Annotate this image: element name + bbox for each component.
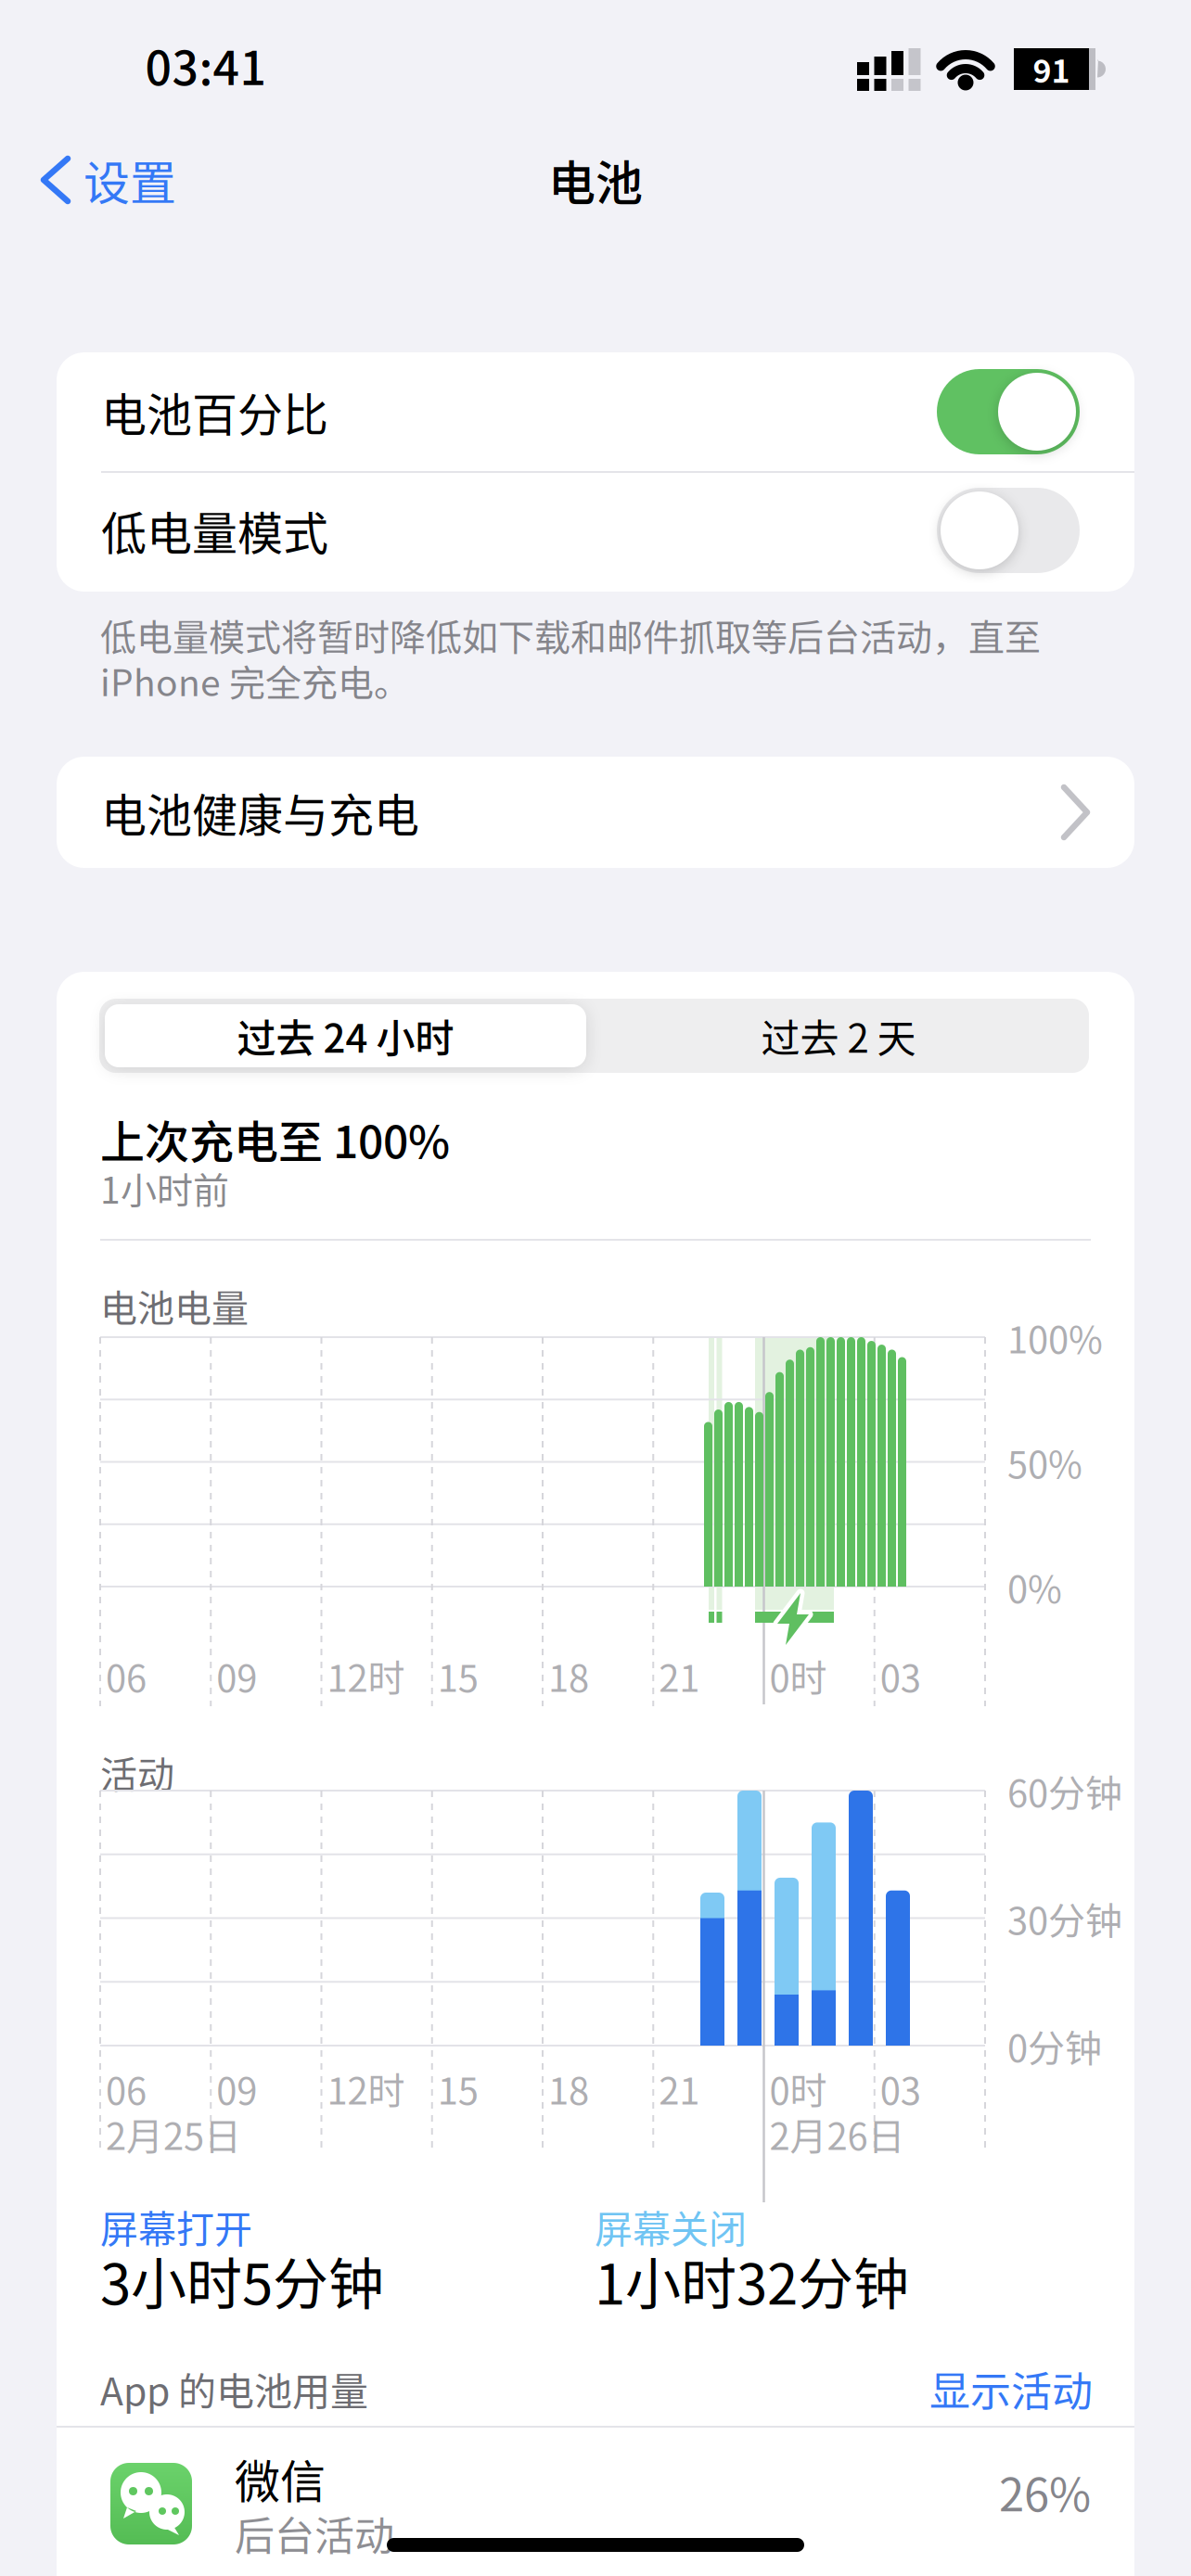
button[interactable]: 过去 2 天: [588, 1004, 1089, 1067]
staticText: 50%: [1007, 1436, 1082, 1488]
staticText: 微信: [235, 2447, 326, 2511]
staticText: 2月26日: [769, 2108, 905, 2160]
staticText: 03:41: [145, 32, 267, 98]
staticText: 显示活动: [929, 2360, 1093, 2417]
staticText: 18: [548, 1649, 589, 1702]
staticText: 91: [1033, 47, 1070, 91]
staticText: 18: [548, 2062, 589, 2114]
staticText: 21: [659, 1649, 700, 1702]
staticText: 06: [106, 1649, 147, 1702]
staticText: 过去 24 小时: [237, 1008, 454, 1063]
staticText: 06: [106, 2062, 147, 2114]
staticText: 0%: [1007, 1560, 1062, 1613]
staticText: 低电量模式: [101, 498, 328, 562]
staticText: 电池电量: [100, 1279, 249, 1332]
staticText: 2月25日: [106, 2108, 241, 2160]
staticText: 后台活动: [235, 2505, 394, 2561]
button[interactable]: 微信: [57, 2429, 1134, 2576]
staticText: 12时: [327, 1649, 405, 1702]
staticText: 电池健康与充电: [101, 780, 419, 844]
staticText: 电池百分比: [101, 380, 328, 444]
staticText: 26%: [999, 2460, 1091, 2524]
staticText: 过去 2 天: [761, 1008, 916, 1063]
button[interactable]: 过去 24 小时: [105, 1004, 586, 1067]
staticText: 0时: [769, 2062, 827, 2114]
staticText: 09: [216, 2062, 257, 2114]
button[interactable]: [937, 369, 1080, 454]
staticText: 设置: [83, 147, 176, 213]
staticText: 03: [880, 2062, 921, 2114]
staticText: 上次充电至 100%: [100, 1107, 450, 1170]
staticText: App 的电池用量: [100, 2362, 368, 2416]
staticText: 屏幕打开: [100, 2200, 252, 2253]
staticText: 100%: [1007, 1311, 1103, 1363]
button[interactable]: 设置: [41, 152, 198, 208]
staticText: 0时: [769, 1649, 827, 1702]
button[interactable]: 显示活动: [814, 2365, 1093, 2413]
staticText: 1小时前: [100, 1162, 229, 1213]
staticText: 60分钟: [1007, 1764, 1122, 1817]
staticText: 15: [438, 2062, 478, 2114]
staticText: 屏幕关闭: [595, 2200, 747, 2253]
staticText: 电池: [548, 147, 643, 213]
staticText: 15: [438, 1649, 478, 1702]
staticText: 12时: [327, 2062, 405, 2114]
button[interactable]: 电池健康与充电: [57, 757, 1134, 868]
staticText: 03: [880, 1649, 921, 1702]
staticText: 1小时32分钟: [595, 2241, 909, 2319]
staticText: 3小时5分钟: [100, 2241, 384, 2319]
staticText: 21: [659, 2062, 700, 2114]
staticText: 0分钟: [1007, 2019, 1102, 2072]
staticText: 低电量模式将暂时降低如下载和邮件抓取等后台活动，直至 iPhone 完全充电。: [100, 612, 1041, 703]
staticText: 30分钟: [1007, 1892, 1122, 1944]
staticText: 活动: [100, 1746, 174, 1798]
button[interactable]: [937, 488, 1080, 573]
staticText: 09: [216, 1649, 257, 1702]
